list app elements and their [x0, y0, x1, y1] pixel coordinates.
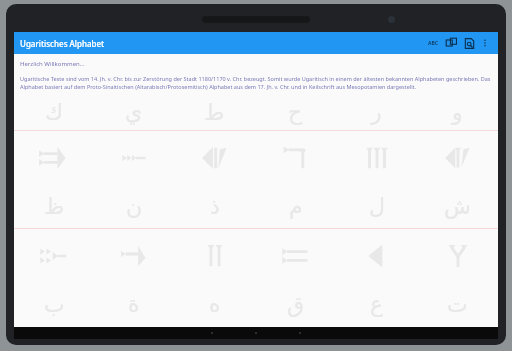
- staticText: ش: [444, 194, 471, 220]
- button[interactable]: Ugaritic sign: [336, 131, 417, 185]
- button[interactable]: Search document: [460, 34, 478, 52]
- staticText: Ugaritische Texte sind vom 14. Jh. v. Ch…: [20, 75, 492, 91]
- button[interactable]: Ugaritic sign: [336, 229, 417, 283]
- button[interactable]: Back: [190, 327, 234, 339]
- staticText: ر: [371, 100, 382, 126]
- button[interactable]: More options: [478, 36, 492, 50]
- staticText: ح: [288, 100, 303, 126]
- staticText: Ugaritisches Alphabet: [20, 38, 105, 49]
- button[interactable]: ABC transliteration: [424, 34, 442, 52]
- staticText: ت: [447, 292, 468, 318]
- staticText: ط: [204, 100, 225, 126]
- staticText: ذ: [210, 194, 220, 220]
- button[interactable]: Recents: [278, 327, 322, 339]
- staticText: ن: [126, 194, 143, 220]
- staticText: ك: [45, 100, 64, 126]
- button[interactable]: Home: [234, 327, 278, 339]
- staticText: ل: [369, 194, 385, 220]
- button[interactable]: Ugaritic sign: [255, 229, 336, 283]
- button[interactable]: Ugaritic sign: [174, 131, 255, 185]
- staticText: و: [452, 100, 463, 126]
- staticText: ق: [287, 292, 305, 318]
- staticText: ب: [44, 292, 65, 318]
- staticText: Herzlich Willkommen...: [20, 60, 85, 68]
- staticText: ع: [370, 292, 384, 318]
- staticText: ABC: [428, 40, 438, 47]
- staticText: ه: [209, 292, 221, 318]
- staticText: ي: [125, 100, 143, 126]
- button[interactable]: Ugaritic sign: [14, 131, 94, 185]
- staticText: ة: [128, 292, 140, 318]
- button[interactable]: Ugaritic sign: [417, 131, 498, 185]
- button[interactable]: Layers: [442, 34, 460, 52]
- staticText: م: [289, 194, 303, 220]
- staticText: ظ: [44, 194, 65, 220]
